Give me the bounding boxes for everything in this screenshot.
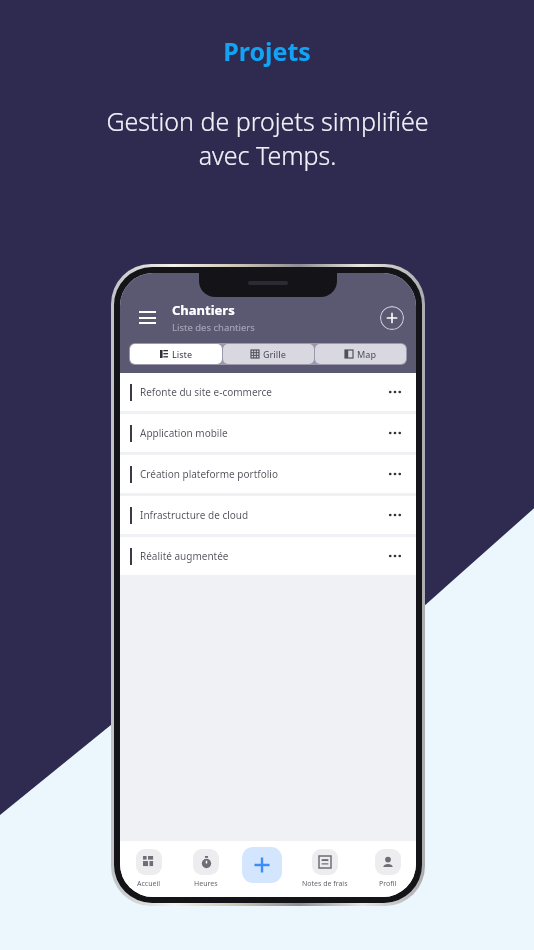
staticText: Profil — [379, 879, 397, 889]
staticText: Gestion de projets simplifiée avec Temps… — [106, 104, 429, 173]
button[interactable]: Heures — [177, 841, 234, 897]
button[interactable]: Infrastructure de cloud — [120, 496, 416, 534]
staticText: Accueil — [137, 879, 161, 889]
button[interactable]: Application mobile — [120, 414, 416, 452]
button[interactable]: Profil — [360, 841, 416, 897]
button[interactable]: Liste — [130, 344, 222, 364]
button[interactable]: Ajouter un chantier — [380, 306, 404, 330]
staticText: Application mobile — [140, 426, 228, 440]
staticText: Infrastructure de cloud — [140, 508, 249, 522]
button[interactable]: Notes de frais — [290, 841, 360, 897]
button[interactable]: Création plateforme portfolio — [120, 455, 416, 493]
staticText: Projets — [223, 34, 311, 68]
button[interactable]: Grille — [223, 344, 314, 364]
staticText: Liste des chantiers — [172, 321, 255, 334]
button[interactable]: Refonte du site e-commerce — [120, 373, 416, 411]
button[interactable]: Menu — [132, 303, 162, 333]
staticText: Création plateforme portfolio — [140, 467, 278, 481]
button[interactable]: Plus d'options — [384, 422, 406, 444]
staticText: Grille — [263, 348, 286, 360]
button[interactable]: Créer — [242, 847, 282, 883]
staticText: Heures — [194, 879, 218, 889]
staticText: Liste — [172, 348, 193, 360]
button[interactable]: Accueil — [120, 841, 177, 897]
button[interactable]: Réalité augmentée — [120, 537, 416, 575]
button[interactable]: Plus d'options — [384, 545, 406, 567]
staticText: Chantiers — [172, 301, 235, 319]
staticText: Map — [357, 348, 376, 360]
button[interactable]: Plus d'options — [384, 504, 406, 526]
staticText: Notes de frais — [302, 879, 348, 889]
staticText: Réalité augmentée — [140, 549, 229, 563]
button[interactable]: Plus d'options — [384, 463, 406, 485]
staticText: Refonte du site e-commerce — [140, 385, 272, 399]
button[interactable]: Plus d'options — [384, 381, 406, 403]
button[interactable]: Map — [315, 344, 406, 364]
